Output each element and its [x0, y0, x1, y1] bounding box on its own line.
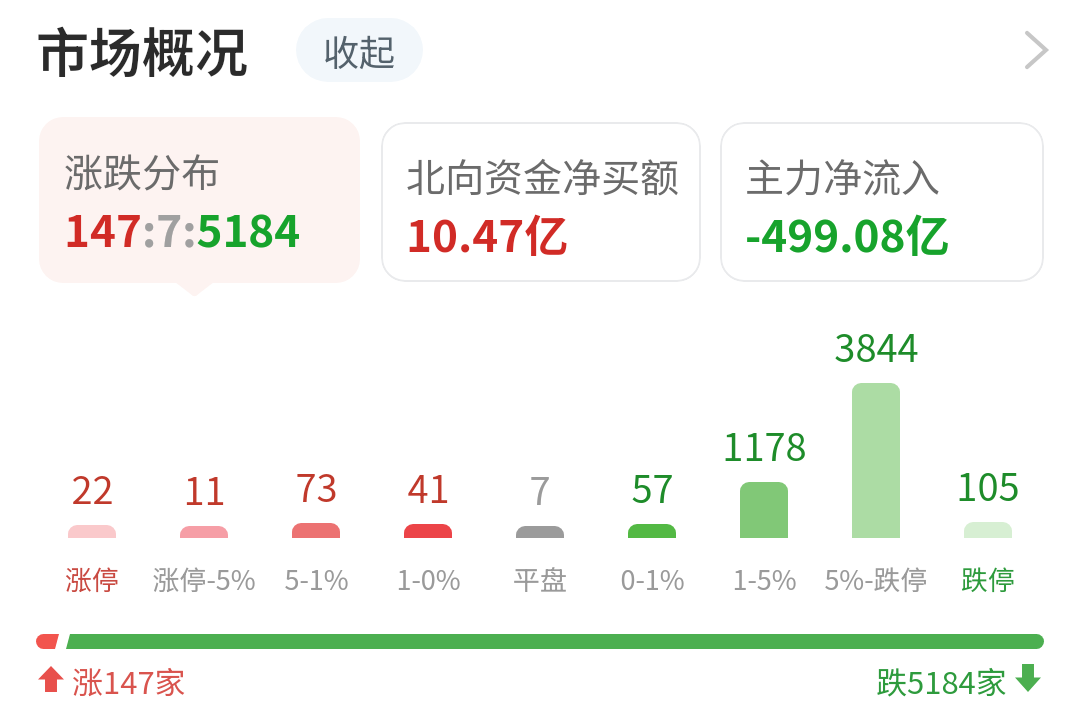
staticText: 涨跌分布 [64, 142, 221, 198]
staticText: 3844 [834, 318, 919, 373]
button[interactable]: 涨跌分布 [39, 117, 360, 283]
staticText: 北向资金净买额 [406, 147, 680, 203]
staticText: 7 [529, 461, 551, 516]
button[interactable]: 1178 [708, 320, 820, 595]
staticText: 10.47亿 [406, 201, 569, 265]
button[interactable]: 22 [36, 320, 148, 595]
button[interactable]: 7 [484, 320, 596, 595]
button[interactable]: 主力净流入 [720, 122, 1044, 282]
staticText: 涨147家 [72, 658, 186, 703]
staticText: 5-1% [284, 559, 349, 598]
button[interactable]: 73 [260, 320, 372, 595]
button[interactable]: 57 [596, 320, 708, 595]
staticText: 收起 [323, 24, 396, 76]
staticText: 57 [631, 459, 674, 514]
button[interactable]: 3844 [820, 320, 932, 595]
button[interactable]: 11 [148, 320, 260, 595]
staticText: 1178 [722, 417, 807, 472]
staticText: 147:7:5184 [64, 196, 301, 260]
staticText: -499.08亿 [745, 201, 950, 265]
staticText: 11 [183, 461, 226, 516]
button[interactable]: More [1004, 20, 1064, 80]
staticText: 0-1% [620, 559, 685, 598]
staticText: 22 [71, 460, 114, 515]
staticText: 涨停-5% [152, 559, 256, 598]
staticText: 涨停 [65, 559, 119, 598]
staticText: 跌停 [961, 559, 1015, 598]
button[interactable]: 105 [932, 320, 1044, 595]
staticText: 105 [956, 457, 1020, 512]
staticText: 1-5% [732, 559, 797, 598]
staticText: 主力净流入 [745, 147, 941, 203]
button[interactable]: 收起 [296, 18, 423, 82]
staticText: 5%-跌停 [824, 559, 928, 598]
button[interactable]: 41 [372, 320, 484, 595]
staticText: 平盘 [513, 559, 567, 598]
button[interactable]: 北向资金净买额 [381, 122, 701, 282]
staticText: 41 [407, 459, 450, 514]
staticText: 市场概况 [36, 11, 248, 88]
staticText: 1-0% [396, 559, 461, 598]
staticText: 跌5184家 [876, 658, 1007, 703]
staticText: 73 [295, 458, 338, 513]
